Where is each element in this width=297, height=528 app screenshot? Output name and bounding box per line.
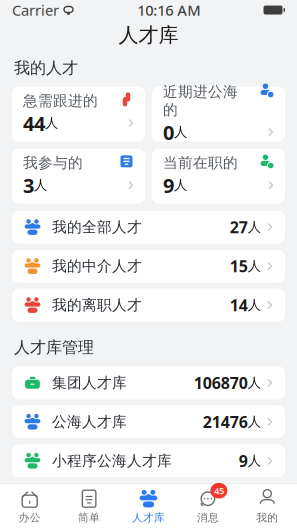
staticText: 简单: [78, 511, 100, 524]
staticText: 9: [239, 450, 248, 471]
staticText: 14: [230, 294, 248, 316]
button[interactable]: 我的全部人才: [12, 211, 285, 244]
staticText: 近期进公海的: [163, 83, 238, 119]
button[interactable]: 45: [178, 484, 238, 524]
staticText: 我的人才: [14, 58, 78, 78]
staticText: 44: [23, 110, 45, 136]
staticText: 我的: [256, 511, 278, 524]
staticText: 21476: [203, 411, 248, 432]
staticText: 人: [248, 258, 261, 274]
staticText: 我的中介人才: [52, 257, 142, 275]
button[interactable]: 集团人才库: [12, 366, 285, 399]
button[interactable]: 我的: [238, 484, 297, 524]
staticText: 急需跟进的: [23, 92, 98, 110]
button[interactable]: 我参与的: [12, 149, 145, 204]
staticText: 我的离职人才: [52, 296, 142, 314]
staticText: 消息: [197, 511, 219, 524]
staticText: 9: [163, 172, 174, 198]
staticText: 人: [248, 297, 261, 313]
button[interactable]: 我的中介人才: [12, 250, 285, 283]
staticText: 人: [248, 219, 261, 235]
staticText: 人: [174, 177, 187, 193]
staticText: 0: [163, 119, 174, 145]
button[interactable]: 简单: [59, 484, 119, 524]
button[interactable]: 小程序公海人才库: [12, 444, 285, 477]
staticText: 我的全部人才: [52, 218, 142, 236]
staticText: 集团人才库: [52, 374, 127, 392]
button[interactable]: 急需跟进的: [12, 87, 145, 142]
button[interactable]: 近期进公海的: [152, 87, 285, 142]
staticText: 15: [230, 255, 248, 277]
staticText: 人才库: [132, 511, 165, 524]
staticText: 当前在职的: [163, 154, 238, 172]
button[interactable]: 人才库: [119, 484, 178, 524]
staticText: 人: [174, 124, 187, 140]
staticText: 人: [248, 453, 261, 469]
staticText: 27: [230, 216, 248, 238]
button[interactable]: 办公: [0, 484, 59, 524]
staticText: 公海人才库: [52, 413, 127, 431]
button[interactable]: 公海人才库: [12, 405, 285, 438]
button[interactable]: 当前在职的: [152, 149, 285, 204]
staticText: 小程序公海人才库: [52, 452, 172, 470]
button[interactable]: 我的离职人才: [12, 289, 285, 322]
staticText: 10:16 AM: [137, 0, 200, 20]
staticText: 3: [23, 172, 34, 198]
staticText: 我参与的: [23, 154, 83, 172]
staticText: 人: [248, 414, 261, 430]
staticText: 办公: [19, 511, 41, 524]
staticText: 45: [214, 484, 224, 497]
staticText: 人才库: [118, 23, 178, 47]
staticText: 人: [45, 115, 58, 131]
staticText: 人: [34, 177, 47, 193]
staticText: 人: [248, 375, 261, 391]
staticText: Carrier: [12, 0, 59, 20]
staticText: 106870: [194, 372, 248, 393]
staticText: 人才库管理: [14, 338, 94, 357]
